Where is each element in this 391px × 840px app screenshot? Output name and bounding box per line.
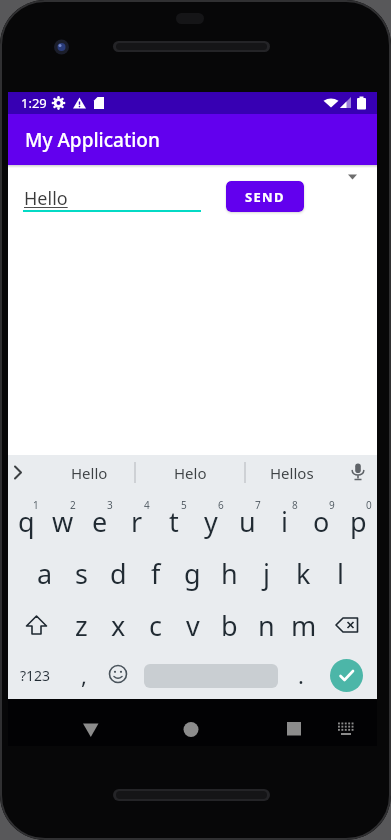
staticText: r — [131, 503, 143, 540]
staticText: a — [37, 555, 53, 592]
staticText: y — [204, 503, 218, 540]
staticText: 4 — [144, 498, 150, 512]
staticText: n — [258, 607, 275, 644]
staticText: e — [92, 503, 108, 540]
staticText: v — [186, 607, 200, 644]
button[interactable]: b — [211, 599, 248, 651]
staticText: m — [291, 607, 317, 644]
button[interactable]: v — [174, 599, 211, 651]
staticText: t — [169, 503, 179, 540]
staticText: b — [221, 607, 238, 644]
staticText: 6 — [218, 498, 224, 512]
button[interactable]: m — [285, 599, 322, 651]
staticText: g — [184, 555, 201, 592]
button[interactable]: s — [63, 547, 100, 599]
button[interactable]: y — [192, 495, 229, 547]
staticText: 8 — [292, 498, 298, 512]
staticText: o — [313, 503, 330, 540]
button[interactable]: SEND — [226, 181, 304, 212]
staticText: h — [221, 555, 238, 592]
staticText: z — [75, 607, 88, 644]
button[interactable]: h — [211, 547, 248, 599]
button[interactable]: , — [64, 651, 104, 699]
button[interactable] — [322, 599, 377, 651]
button[interactable] — [131, 699, 254, 746]
staticText: 0 — [366, 498, 372, 512]
button[interactable] — [254, 699, 377, 746]
button[interactable]: o — [303, 495, 340, 547]
staticText: f — [151, 555, 161, 592]
staticText: k — [296, 555, 311, 592]
staticText: 7 — [255, 498, 261, 512]
staticText: SEND — [245, 188, 285, 206]
staticText: 2 — [70, 498, 76, 512]
staticText: . — [298, 660, 304, 690]
button[interactable]: l — [322, 547, 359, 599]
button[interactable]: f — [137, 547, 174, 599]
button[interactable]: Helo — [145, 455, 235, 490]
staticText: d — [110, 555, 127, 592]
staticText: , — [81, 660, 87, 690]
staticText: p — [350, 503, 367, 540]
staticText: 9 — [329, 498, 335, 512]
button[interactable]: j — [248, 547, 285, 599]
staticText: 5 — [181, 498, 187, 512]
button[interactable]: d — [100, 547, 137, 599]
button[interactable]: t — [155, 495, 192, 547]
button[interactable]: p — [340, 495, 377, 547]
staticText: 1:29 — [21, 94, 47, 112]
staticText: 3 — [107, 498, 113, 512]
button[interactable]: k — [285, 547, 322, 599]
staticText: u — [239, 503, 256, 540]
staticText: x — [111, 607, 126, 644]
button[interactable]: n — [248, 599, 285, 651]
staticText: l — [337, 555, 344, 592]
button[interactable]: q — [8, 495, 44, 547]
button[interactable]: x — [100, 599, 137, 651]
staticText: ?123 — [20, 666, 51, 685]
button[interactable]: i — [266, 495, 303, 547]
button[interactable]: z — [63, 599, 100, 651]
button[interactable]: g — [174, 547, 211, 599]
staticText: c — [149, 607, 162, 644]
button[interactable]: Hello — [44, 455, 134, 490]
staticText: My Application — [25, 127, 160, 153]
button[interactable]: r — [118, 495, 155, 547]
button[interactable] — [98, 651, 138, 699]
staticText: 1 — [33, 498, 39, 512]
button[interactable] — [8, 599, 63, 651]
button[interactable]: w — [44, 495, 81, 547]
button[interactable]: . — [281, 651, 321, 699]
button[interactable]: e — [81, 495, 118, 547]
button[interactable]: ?123 — [8, 651, 62, 699]
staticText: i — [281, 503, 288, 540]
button[interactable]: Hellos — [247, 455, 337, 490]
staticText: Hello — [71, 463, 108, 483]
button[interactable]: u — [229, 495, 266, 547]
button[interactable] — [330, 659, 363, 692]
button[interactable] — [8, 699, 131, 746]
button[interactable]: c — [137, 599, 174, 651]
staticText: q — [18, 503, 35, 540]
button[interactable]: Hello — [24, 186, 68, 211]
button[interactable]: a — [26, 547, 63, 599]
staticText: Hellos — [270, 463, 314, 483]
staticText: j — [263, 555, 270, 592]
staticText: Helo — [174, 463, 207, 483]
staticText: s — [75, 555, 88, 592]
staticText: w — [52, 503, 74, 540]
